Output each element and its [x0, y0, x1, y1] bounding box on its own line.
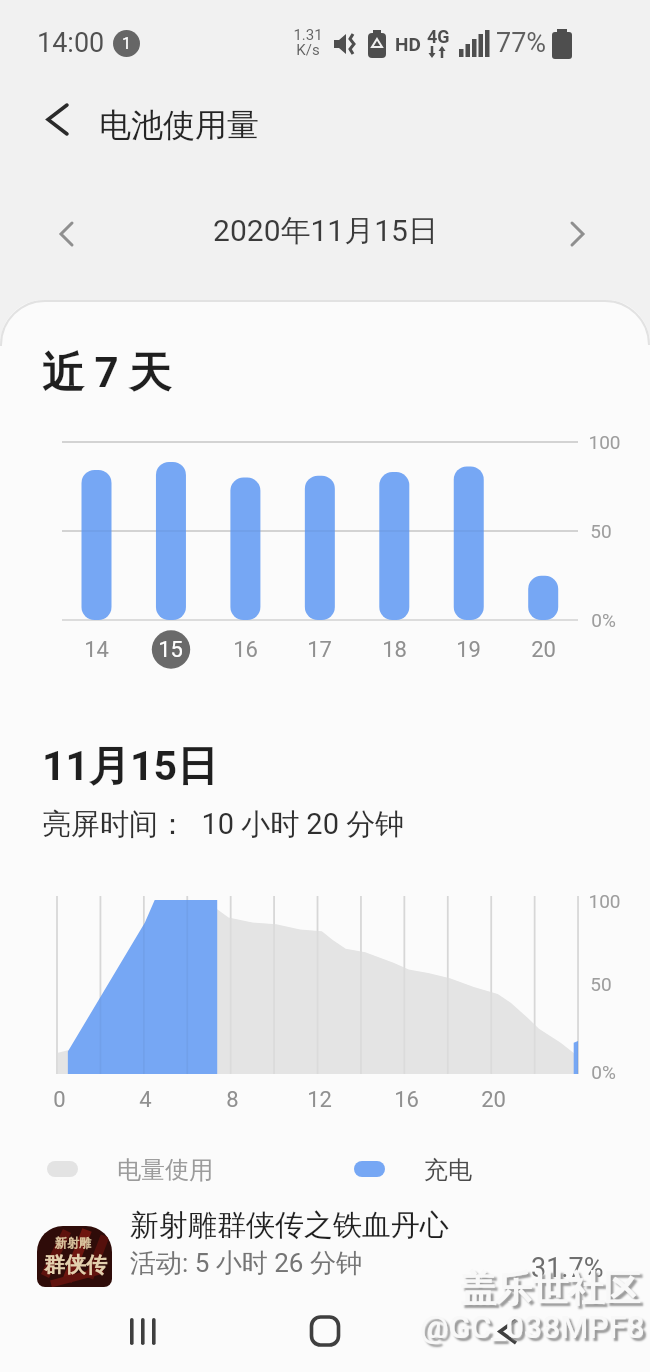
- staticText: 充电: [424, 1155, 472, 1185]
- staticText: 50: [590, 520, 612, 542]
- button[interactable]: [238, 1300, 412, 1372]
- staticText: 新射雕: [55, 1235, 91, 1250]
- staticText: 16: [394, 1087, 419, 1113]
- button[interactable]: [40, 205, 95, 265]
- staticText: 14: [84, 637, 109, 663]
- staticText: 17: [307, 637, 332, 663]
- staticText: 0%: [591, 1061, 616, 1083]
- button[interactable]: [33, 96, 83, 146]
- staticText: 20: [481, 1087, 506, 1113]
- staticText: 100: [588, 431, 621, 453]
- staticText: 1: [122, 34, 131, 53]
- staticText: 100: [588, 890, 621, 912]
- staticText: 11月15日: [42, 741, 219, 793]
- staticText: @GC_038MPF8: [420, 1308, 645, 1346]
- staticText: 14:00: [37, 27, 105, 59]
- staticText: 16: [233, 637, 258, 663]
- staticText: 群侠传: [44, 1252, 107, 1278]
- button[interactable]: [56, 1300, 230, 1372]
- staticText: HD: [395, 33, 421, 55]
- staticText: 8: [226, 1087, 239, 1113]
- staticText: 4G: [427, 26, 450, 47]
- staticText: 亮屏时间： 10 小时 20 分钟: [42, 806, 405, 843]
- staticText: 19: [456, 637, 481, 663]
- staticText: 77%: [496, 27, 547, 59]
- staticText: 20: [531, 637, 556, 663]
- staticText: 0: [53, 1087, 66, 1113]
- staticText: 2020年11月15日: [213, 212, 438, 250]
- staticText: 电池使用量: [99, 105, 259, 145]
- staticText: 电量使用: [117, 1155, 213, 1185]
- button[interactable]: [549, 205, 604, 265]
- staticText: 盖乐世社区: [460, 1266, 640, 1311]
- staticText: 新射雕群侠传之铁血丹心: [130, 1207, 449, 1244]
- staticText: 4: [139, 1087, 152, 1113]
- button[interactable]: [0, 1200, 650, 1300]
- staticText: 近 7 天: [42, 347, 172, 400]
- staticText: 12: [307, 1087, 332, 1113]
- staticText: 0%: [591, 609, 616, 631]
- staticText: K/s: [296, 41, 320, 59]
- staticText: 50: [590, 973, 612, 995]
- staticText: 18: [382, 637, 407, 663]
- staticText: 31.7%: [531, 1252, 604, 1284]
- button[interactable]: [420, 1300, 594, 1372]
- staticText: 活动: 5 小时 26 分钟: [130, 1247, 362, 1280]
- staticText: 15: [158, 637, 183, 663]
- staticText: 1.31: [293, 26, 323, 44]
